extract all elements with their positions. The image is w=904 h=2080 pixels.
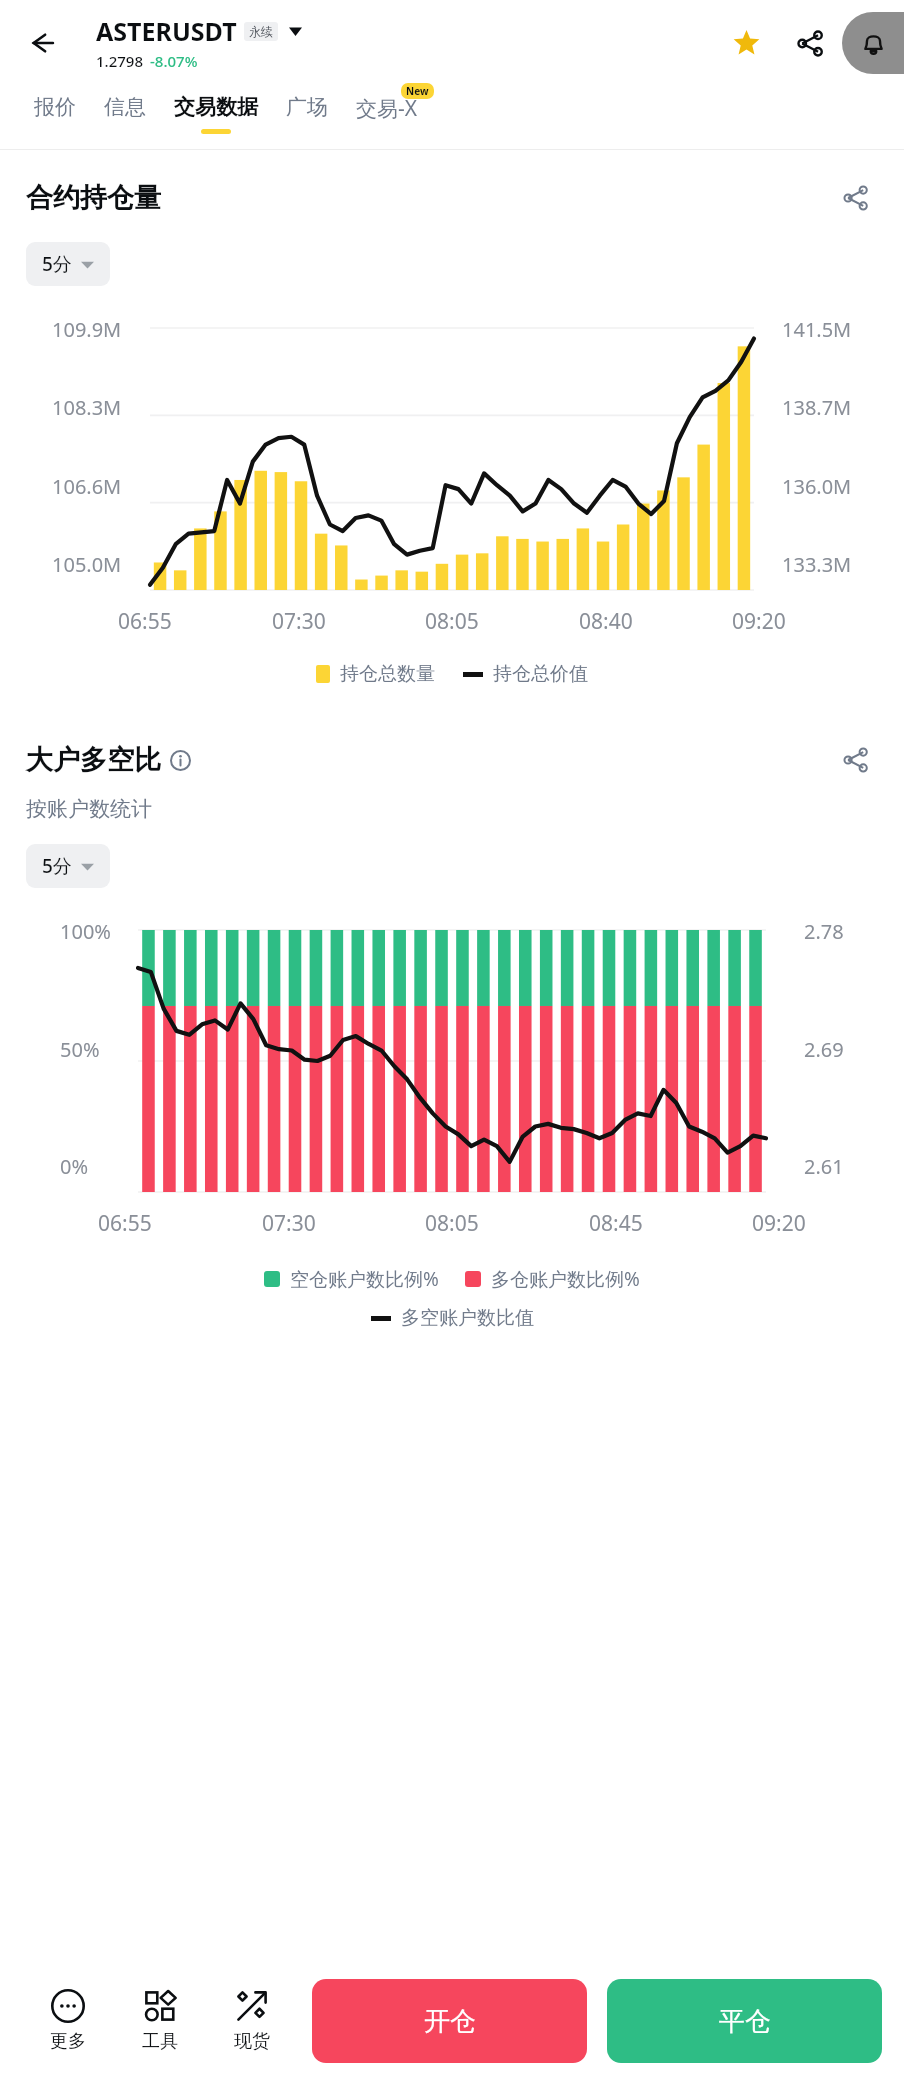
button[interactable]: Share chart [834,738,878,782]
button[interactable]: Select pair [286,22,304,40]
button[interactable]: Share chart [834,176,878,220]
staticText: 报价 [34,94,76,120]
staticText: 100% [60,918,111,945]
button[interactable]: 5分 [26,844,110,888]
button[interactable]: 平仓 [607,1979,882,2063]
staticText: 开仓 [424,2005,476,2038]
staticText: 工具 [142,2030,178,2053]
button[interactable]: Share [782,15,838,71]
staticText: 2.61 [804,1153,844,1180]
staticText: 交易-X [356,94,418,123]
staticText: 08:40 [579,607,633,636]
staticText: 大户多空比 [26,743,161,777]
staticText: 108.3M [52,394,122,421]
button[interactable]: Notifications [842,12,904,74]
button[interactable]: 更多 [22,1989,114,2053]
staticText: 更多 [50,2030,86,2053]
staticText: 141.5M [782,316,852,343]
staticText: 109.9M [52,316,122,343]
staticText: 持仓总价值 [493,662,588,686]
staticText: 08:45 [589,1209,643,1238]
staticText: 信息 [104,94,146,120]
staticText: 广场 [286,94,328,120]
button[interactable]: 报价 [20,85,90,149]
button[interactable]: 现货 [206,1989,298,2053]
staticText: 09:20 [732,607,786,636]
staticText: 空仓账户数比例% [290,1266,439,1292]
button[interactable]: 信息 [90,85,160,149]
staticText: 持仓总数量 [340,662,435,686]
staticText: 06:55 [98,1209,152,1238]
staticText: 0% [60,1153,89,1180]
button[interactable]: 开仓 [312,1979,587,2063]
button[interactable]: 工具 [114,1989,206,2053]
staticText: 07:30 [272,607,326,636]
staticText: 合约持仓量 [26,181,161,215]
staticText: 2.78 [804,918,844,945]
staticText: 平仓 [719,2005,771,2038]
staticText: 交易数据 [174,94,258,120]
staticText: 06:55 [118,607,172,636]
staticText: 永续 [249,24,273,39]
staticText: 5分 [42,251,72,277]
staticText: 1.2798 [96,51,143,71]
staticText: 105.0M [52,551,122,578]
staticText: 136.0M [782,473,852,500]
staticText: 现货 [234,2030,270,2053]
button[interactable]: 交易-X [342,85,432,149]
button[interactable]: 广场 [272,85,342,149]
staticText: 106.6M [52,473,122,500]
staticText: 多空账户数比值 [401,1306,534,1330]
staticText: 50% [60,1036,100,1063]
button[interactable]: 5分 [26,242,110,286]
button[interactable]: Favorite [718,15,774,71]
button[interactable]: Info [167,747,193,773]
staticText: 138.7M [782,394,852,421]
staticText: 2.69 [804,1036,844,1063]
staticText: 按账户数统计 [26,796,152,822]
staticText: 08:05 [425,607,479,636]
staticText: -8.07% [150,51,198,71]
button[interactable]: 交易数据 [160,85,272,149]
button[interactable]: Back [14,15,70,71]
staticText: New [406,84,429,98]
staticText: 07:30 [262,1209,316,1238]
staticText: ASTERUSDT [96,14,237,48]
staticText: 多仓账户数比例% [491,1266,640,1292]
staticText: 5分 [42,853,72,879]
staticText: 09:20 [752,1209,806,1238]
staticText: 133.3M [782,551,852,578]
staticText: 08:05 [425,1209,479,1238]
